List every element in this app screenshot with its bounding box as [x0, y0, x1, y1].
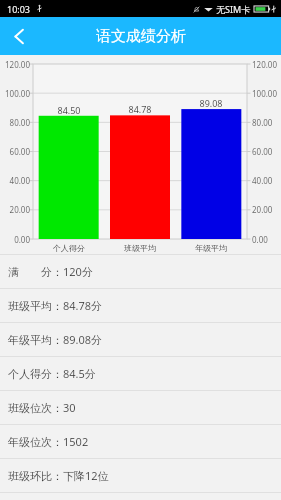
staticText: 100.00 [0, 88, 30, 99]
staticText: 班级平均：84.78分 [8, 298, 103, 313]
staticText: 60.00 [252, 146, 281, 157]
staticText: 无SIM卡 [216, 3, 251, 15]
staticText: 84.50 [49, 104, 89, 116]
staticText: 年级平均：89.08分 [8, 332, 103, 347]
staticText: 个人得分 [44, 243, 94, 253]
staticText: 89.08 [191, 97, 231, 109]
staticText: 年级平均 [186, 243, 236, 253]
button[interactable]: Back [0, 17, 38, 55]
button[interactable]: 班级位次：30 [0, 391, 281, 424]
staticText: 80.00 [252, 117, 281, 128]
button[interactable]: 年级位次：1502 [0, 425, 281, 458]
staticText: 满 分：120分 [8, 264, 93, 279]
staticText: 0.00 [252, 234, 281, 245]
staticText: 个人得分：84.5分 [8, 366, 96, 381]
staticText: 语文成绩分析 [96, 27, 186, 46]
button[interactable]: 班级平均：84.78分 [0, 289, 281, 322]
staticText: 班级环比：下降12位 [8, 468, 109, 483]
staticText: 80.00 [0, 117, 30, 128]
staticText: 60.00 [0, 146, 30, 157]
staticText: 10:03 [7, 3, 31, 15]
staticText: 年级位次：1502 [8, 434, 89, 449]
staticText: 100.00 [252, 88, 281, 99]
button[interactable]: 满 分：120分 [0, 255, 281, 288]
button[interactable]: 班级环比：下降12位 [0, 459, 281, 492]
staticText: 120.00 [0, 59, 30, 70]
staticText: 班级位次：30 [8, 400, 76, 415]
staticText: 40.00 [252, 175, 281, 186]
staticText: 0.00 [0, 234, 30, 245]
button[interactable]: 年级平均：89.08分 [0, 323, 281, 356]
staticText: 120.00 [252, 59, 281, 70]
staticText: 40.00 [0, 175, 30, 186]
staticText: 84.78 [120, 103, 160, 115]
staticText: 20.00 [0, 204, 30, 215]
staticText: 班级平均 [115, 243, 165, 253]
staticText: 20.00 [252, 204, 281, 215]
button[interactable]: 个人得分：84.5分 [0, 357, 281, 390]
